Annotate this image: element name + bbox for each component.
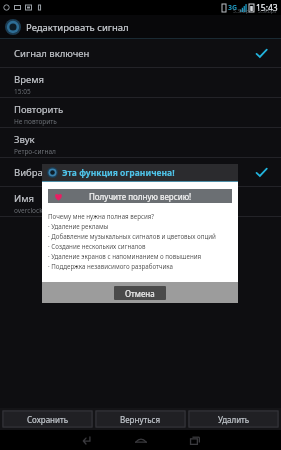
staticText: · Поддержка независимого разработчика <box>48 262 173 270</box>
staticText: · Удаление рекламы <box>48 222 109 230</box>
staticText: Ретро-сигнал <box>14 147 56 156</box>
button[interactable]: Вибрация включена <box>0 158 281 186</box>
staticText: Почему мне нужна полная версия? <box>48 212 155 220</box>
button[interactable]: Время <box>0 68 281 97</box>
button[interactable]: Сигнал включен <box>0 39 281 67</box>
staticText: Вибрация включена <box>14 166 108 179</box>
button[interactable]: Recent apps <box>187 432 203 448</box>
staticText: · Создание нескольких сигналов <box>48 242 146 250</box>
staticText: Отмена <box>125 288 155 299</box>
staticText: Имя <box>14 192 34 205</box>
button[interactable]: Home <box>133 432 149 448</box>
button[interactable]: Повторить <box>0 98 281 127</box>
staticText: Время <box>14 73 44 86</box>
staticText: Сигнал включен <box>14 47 90 60</box>
staticText: Сохранить <box>27 414 69 425</box>
staticText: Эта функция ограничена! <box>62 167 175 179</box>
button[interactable]: Имя <box>0 187 281 216</box>
staticText: Получите полную версию! <box>89 191 192 202</box>
staticText: 5.3kbps <box>233 8 252 15</box>
button[interactable]: Back <box>79 432 95 448</box>
staticText: overclockers <box>14 206 53 215</box>
button[interactable]: Получите полную версию! <box>48 189 232 203</box>
staticText: 3G <box>228 3 238 13</box>
staticText: Звук <box>14 133 35 146</box>
button[interactable]: Звук <box>0 128 281 157</box>
staticText: Вернуться <box>120 414 161 425</box>
staticText: 15:05 <box>14 87 31 96</box>
staticText: Удалить <box>218 414 250 425</box>
staticText: 5.3kbps <box>258 8 277 15</box>
staticText: Редактировать сигнал <box>26 21 129 34</box>
button[interactable]: Вернуться <box>95 410 186 428</box>
button[interactable]: Отмена <box>114 286 166 300</box>
staticText: · Удаление экранов с напоминанием о повы… <box>48 252 232 260</box>
button[interactable]: Удалить <box>188 410 279 428</box>
staticText: · Добавление музыкальных сигналов и цвет… <box>48 232 216 240</box>
staticText: Не повторить <box>14 117 57 126</box>
staticText: Повторить <box>14 103 64 116</box>
staticText: 15:43 <box>256 2 278 14</box>
button[interactable]: Сохранить <box>2 410 93 428</box>
